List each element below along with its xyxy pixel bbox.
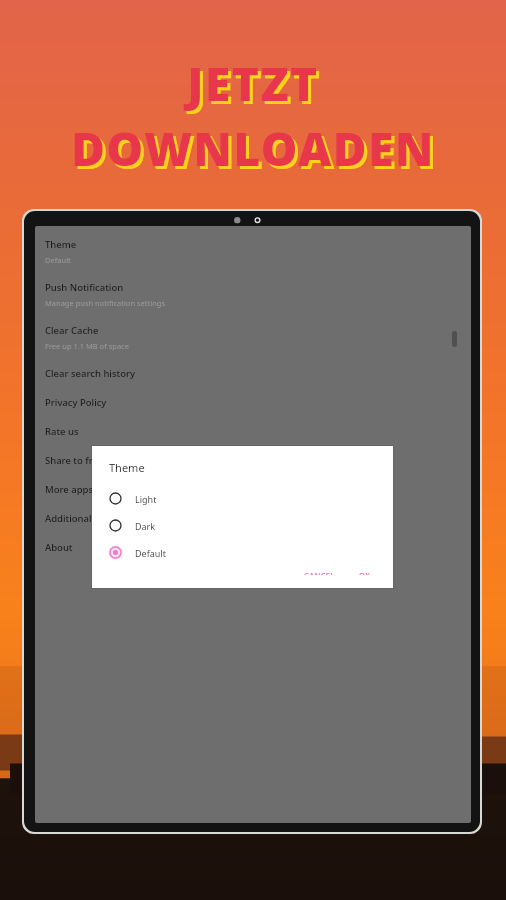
- staticText: Additional permissions: [45, 512, 150, 525]
- staticText: Theme: [109, 460, 145, 475]
- staticText: Clear Cache: [45, 324, 99, 337]
- button[interactable]: About: [40, 533, 471, 562]
- staticText: OK: [359, 570, 371, 575]
- button[interactable]: Clear search history: [40, 359, 471, 388]
- staticText: Default: [45, 255, 71, 265]
- staticText: Manage push notification settings: [45, 298, 165, 308]
- staticText: CANCEL: [304, 570, 335, 575]
- button[interactable]: Clear Cache: [40, 316, 471, 359]
- button[interactable]: Share to friends: [40, 446, 471, 475]
- button[interactable]: CANCEL: [298, 566, 341, 579]
- staticText: Default: [135, 547, 166, 559]
- button[interactable]: More apps: [40, 475, 471, 504]
- button[interactable]: Rate us: [40, 417, 471, 446]
- button[interactable]: Push Notification: [40, 273, 471, 316]
- staticText: DOWNLOADEN: [74, 120, 438, 183]
- staticText: JETZT: [187, 52, 319, 115]
- button[interactable]: Default: [92, 539, 393, 566]
- staticText: JETZT: [190, 55, 322, 118]
- staticText: Push Notification: [45, 281, 124, 294]
- button[interactable]: OK: [353, 566, 377, 579]
- staticText: Dark: [135, 520, 156, 532]
- staticText: DOWNLOADEN: [71, 117, 435, 180]
- staticText: About: [45, 541, 73, 554]
- staticText: More apps: [45, 483, 94, 496]
- staticText: Clear search history: [45, 367, 136, 380]
- staticText: Free up 1.1 MB of space: [45, 341, 129, 351]
- staticText: Theme: [45, 238, 77, 251]
- staticText: Rate us: [45, 425, 79, 438]
- button[interactable]: Theme: [40, 230, 471, 273]
- button[interactable]: Dark: [92, 512, 393, 539]
- button[interactable]: Additional permissions: [40, 504, 471, 533]
- staticText: Share to friends: [45, 454, 118, 467]
- button[interactable]: Privacy Policy: [40, 388, 471, 417]
- staticText: Light: [135, 493, 157, 505]
- staticText: Privacy Policy: [45, 396, 107, 409]
- button[interactable]: Light: [92, 485, 393, 512]
